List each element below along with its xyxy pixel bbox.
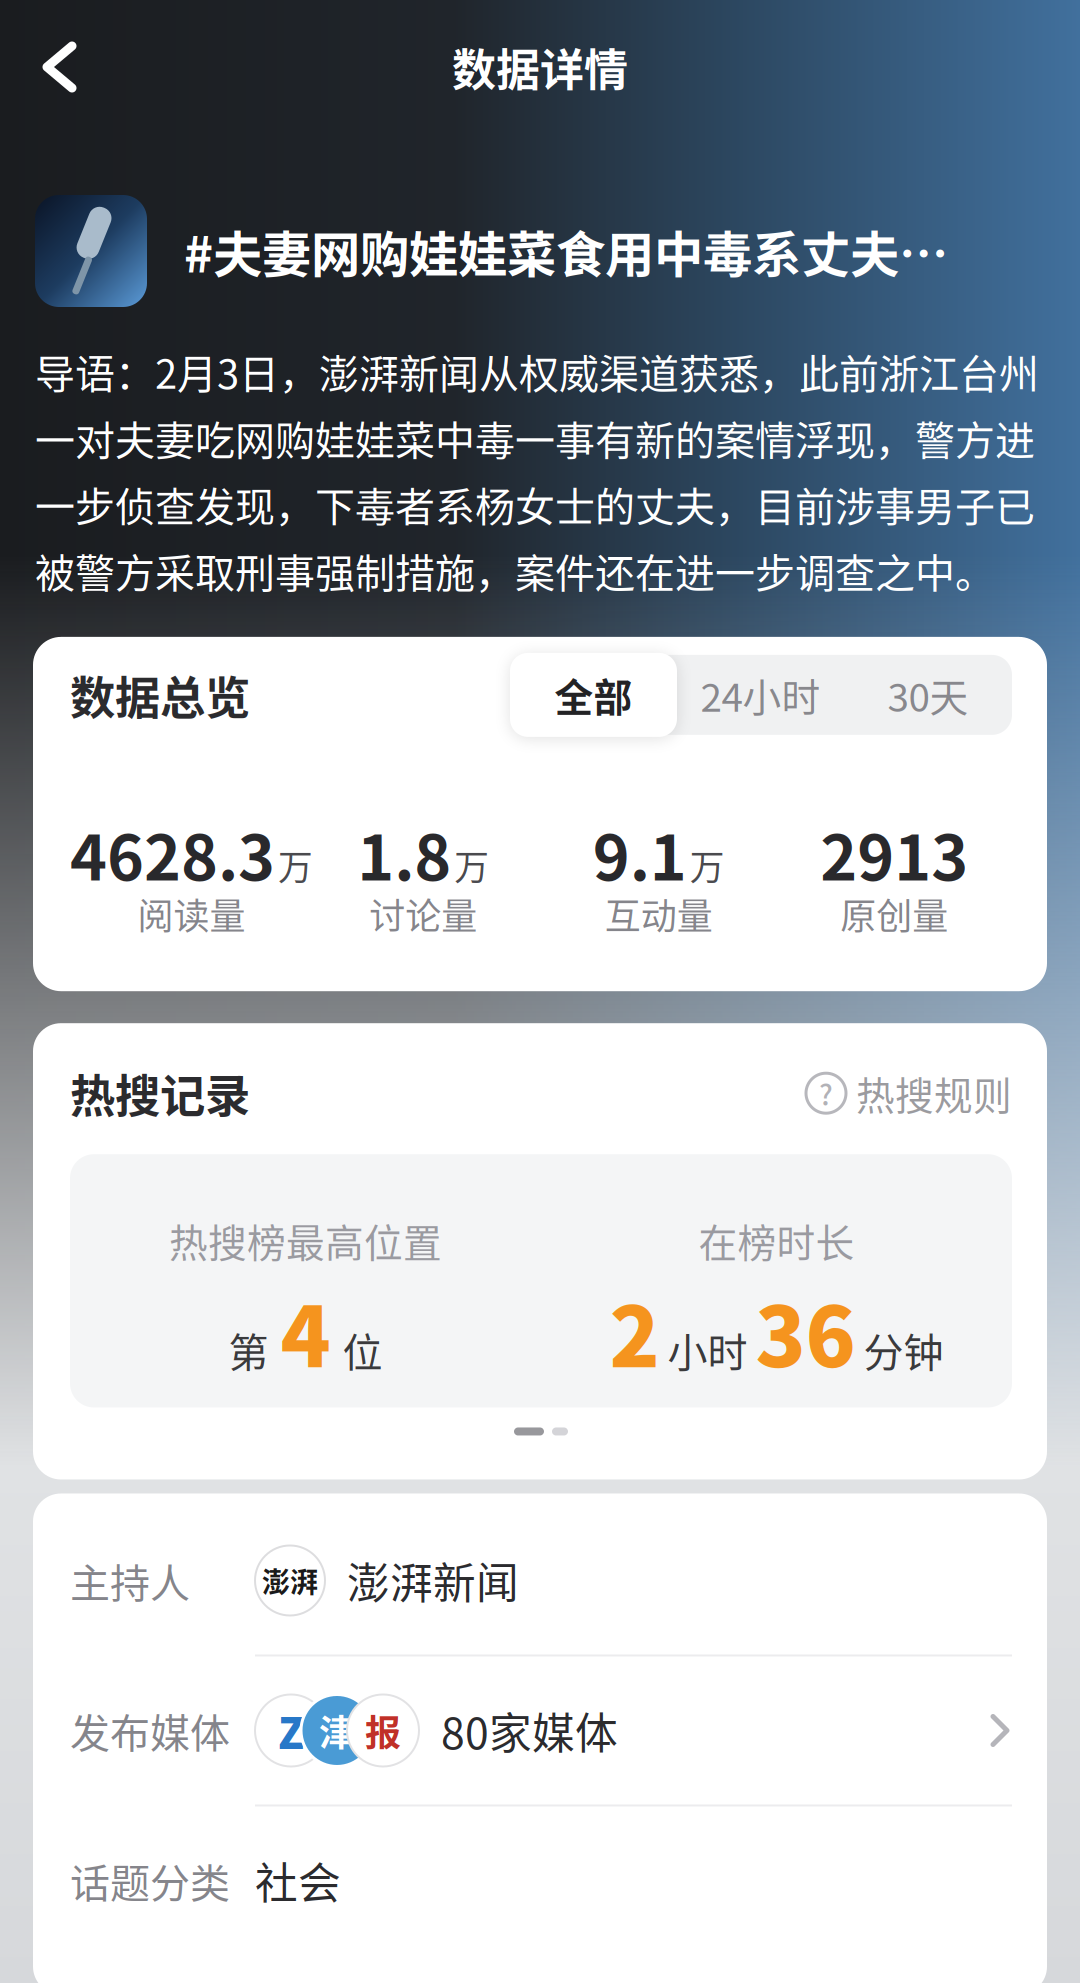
staticText: 万 [690,841,725,890]
staticText: 小时 [667,1321,747,1378]
staticText: 在榜时长 [698,1213,854,1268]
staticText: 澎湃 [262,1561,318,1600]
staticText: 导语：2月3日，澎湃新闻从权威渠道获悉，此前浙江台州 [35,343,1039,399]
staticText: 社会 [255,1850,341,1911]
staticText: #夫妻网购娃娃菜食用中毒系丈夫… [184,216,948,286]
staticText: 阅读量 [137,888,245,939]
staticText: 热搜记录 [70,1061,250,1125]
staticText: 2913 [820,809,968,897]
staticText: ? [819,1073,833,1113]
staticText: 津 [319,1705,355,1756]
button[interactable]: 30天 [844,655,1012,735]
staticText: 澎湃新闻 [347,1550,519,1611]
staticText: 4 [280,1273,330,1389]
staticText: 全部 [554,668,632,722]
staticText: 原创量 [840,888,948,939]
staticText: 2 [609,1273,659,1389]
staticText: 1.8 [357,809,451,897]
staticText: 80家媒体 [441,1700,618,1761]
staticText: 发布媒体 [70,1702,230,1759]
staticText: 9.1 [593,809,687,897]
staticText: 位 [342,1321,382,1378]
staticText: 36 [755,1273,855,1389]
staticText: 话题分类 [70,1852,230,1909]
staticText: 报 [365,1705,401,1756]
staticText: 24小时 [700,668,820,722]
staticText: 主持人 [70,1552,190,1609]
staticText: 万 [278,841,313,890]
staticText: 一步侦查发现，下毒者系杨女士的丈夫，目前涉事男子已 [35,476,1035,532]
staticText: 一对夫妻吃网购娃娃菜中毒一事有新的案情浮现，警方进 [35,409,1035,466]
staticText: 4628.3 [70,809,275,897]
button[interactable]: 返回 [0,41,82,93]
staticText: 互动量 [605,888,713,939]
staticText: 30天 [887,668,968,722]
staticText: 数据详情 [452,36,628,98]
staticText: 分钟 [863,1321,943,1378]
button[interactable]: 发布媒体 [70,1656,1012,1804]
staticText: 热搜榜最高位置 [169,1213,442,1268]
staticText: 热搜规则 [856,1066,1012,1120]
staticText: 被警方采取刑事强制措施，案件还在进一步调查之中。 [35,542,995,599]
button[interactable]: 热搜规则 [806,1066,1012,1120]
staticText: 数据总览 [70,663,250,727]
button[interactable]: 主持人 [70,1506,1012,1654]
button[interactable]: 24小时 [677,655,844,735]
staticText: 万 [454,841,489,890]
staticText: 第 [228,1321,268,1378]
button[interactable]: 全部 [510,653,677,737]
staticText: Z [278,1700,304,1761]
staticText: 讨论量 [369,888,477,939]
